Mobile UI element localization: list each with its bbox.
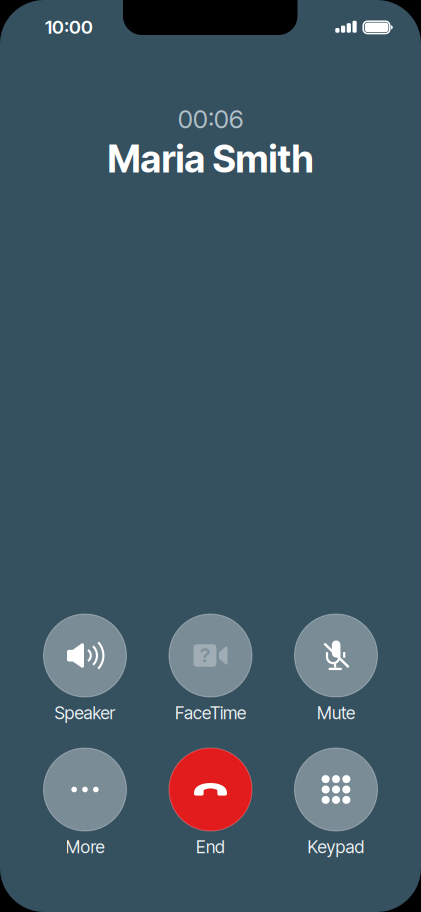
staticText: 10:00 <box>45 16 93 38</box>
staticText: Keypad <box>307 836 364 857</box>
staticText: More <box>65 836 104 857</box>
staticText: ? <box>200 643 210 667</box>
button[interactable]: Mute <box>273 614 399 725</box>
button[interactable]: More <box>22 748 148 859</box>
staticText: Speaker <box>54 702 115 723</box>
staticText: Maria Smith <box>107 136 313 182</box>
staticText: End <box>196 836 225 857</box>
button[interactable]: Keypad <box>273 748 399 859</box>
button[interactable]: End <box>148 748 273 859</box>
staticText: FaceTime <box>175 702 246 723</box>
staticText: 00:06 <box>178 104 243 134</box>
button[interactable]: Speaker <box>22 614 148 725</box>
button[interactable]: ? <box>148 614 273 725</box>
staticText: Mute <box>317 702 355 723</box>
